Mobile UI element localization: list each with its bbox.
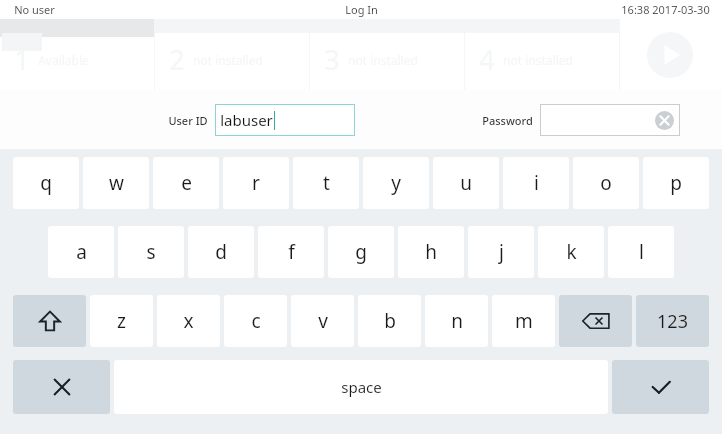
button[interactable]: space [114, 360, 608, 414]
staticText: i [534, 170, 539, 196]
button[interactable]: 2 [155, 19, 310, 90]
staticText: User ID [168, 113, 208, 128]
staticText: g [355, 239, 367, 265]
staticText: 1 [14, 41, 30, 78]
button[interactable]: p [643, 157, 709, 209]
button[interactable]: h [398, 226, 464, 278]
staticText: 4 [479, 41, 495, 78]
staticText: z [117, 308, 126, 334]
button[interactable]: Clear password [540, 104, 680, 136]
button[interactable]: a [48, 226, 114, 278]
staticText: 16:38 2017-03-30 [621, 2, 710, 17]
button[interactable]: g [328, 226, 394, 278]
staticText: l [639, 239, 644, 265]
staticText: Log In [345, 2, 378, 17]
button[interactable]: n [425, 295, 488, 347]
staticText: t [323, 170, 330, 196]
button[interactable]: f [258, 226, 324, 278]
staticText: space [341, 377, 382, 397]
button[interactable]: 3 [310, 19, 465, 90]
button[interactable]: m [492, 295, 555, 347]
staticText: a [76, 239, 87, 265]
staticText: not installed [348, 52, 418, 68]
button[interactable]: r [223, 157, 289, 209]
staticText: p [670, 170, 682, 196]
button[interactable]: Shift [13, 295, 86, 347]
staticText: 3 [324, 41, 340, 78]
staticText: d [215, 239, 227, 265]
staticText: 2 [169, 41, 185, 78]
staticText: 123 [657, 309, 688, 334]
button[interactable]: k [538, 226, 604, 278]
staticText: not installed [193, 52, 263, 68]
button[interactable]: 1 [0, 19, 155, 90]
staticText: f [288, 239, 295, 265]
staticText: Password [482, 113, 533, 128]
button[interactable]: 123 [636, 295, 709, 347]
staticText: v [318, 308, 328, 334]
button[interactable]: d [188, 226, 254, 278]
button[interactable]: x [157, 295, 220, 347]
staticText: q [40, 170, 52, 196]
staticText: s [146, 239, 156, 265]
button[interactable]: l [608, 226, 674, 278]
button[interactable]: e [153, 157, 219, 209]
button[interactable]: j [468, 226, 534, 278]
button[interactable]: Cancel [13, 360, 110, 414]
button[interactable]: q [13, 157, 79, 209]
staticText: w [109, 170, 124, 196]
button[interactable]: Start run [620, 19, 720, 90]
staticText: m [515, 308, 533, 334]
staticText: not installed [503, 52, 573, 68]
staticText: u [460, 170, 472, 196]
button[interactable]: v [291, 295, 354, 347]
staticText: h [425, 239, 437, 265]
staticText: j [499, 239, 504, 265]
staticText: k [566, 239, 577, 265]
button[interactable]: 4 [465, 19, 620, 90]
button[interactable]: Backspace [559, 295, 632, 347]
button[interactable]: Clear password [655, 111, 674, 130]
button[interactable]: z [90, 295, 153, 347]
button[interactable]: w [83, 157, 149, 209]
button[interactable]: labuser [215, 104, 355, 136]
button[interactable]: o [573, 157, 639, 209]
staticText: labuser [220, 110, 273, 130]
button[interactable]: u [433, 157, 499, 209]
staticText: e [181, 170, 192, 196]
staticText: y [391, 170, 401, 196]
button[interactable]: Confirm [612, 360, 709, 414]
staticText: b [384, 308, 396, 334]
staticText: Available [38, 52, 89, 68]
button[interactable]: s [118, 226, 184, 278]
staticText: o [600, 170, 612, 196]
staticText: No user [14, 2, 55, 17]
staticText: c [251, 308, 261, 334]
button[interactable]: c [224, 295, 287, 347]
staticText: n [451, 308, 463, 334]
button[interactable]: t [293, 157, 359, 209]
staticText: r [252, 170, 260, 196]
staticText: x [183, 308, 194, 334]
button[interactable]: b [358, 295, 421, 347]
button[interactable]: y [363, 157, 429, 209]
button[interactable]: i [503, 157, 569, 209]
